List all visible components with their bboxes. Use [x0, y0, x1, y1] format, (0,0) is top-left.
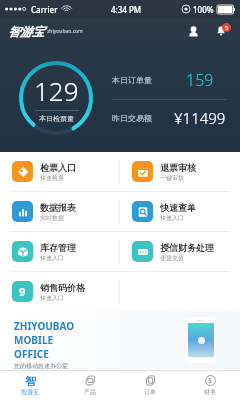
staticText: 100%: [193, 4, 214, 15]
staticText: 129: [34, 73, 79, 108]
staticText: ZHIYOUBAO: [14, 319, 75, 333]
button[interactable]: 产品: [60, 370, 120, 400]
staticText: 4:34 PM: [111, 4, 142, 15]
button[interactable]: 数据报表: [0, 192, 119, 231]
staticText: 检票入口: [40, 162, 76, 173]
button[interactable]: 检票入口: [0, 152, 119, 191]
button[interactable]: Account: [182, 20, 204, 42]
staticText: Carrier: [31, 4, 58, 15]
staticText: 本日检票量: [39, 114, 74, 123]
staticText: 销售码价格: [40, 282, 85, 293]
button[interactable]: 9: [0, 272, 119, 311]
staticText: 库存管理: [40, 242, 76, 253]
staticText: 数据报表: [40, 202, 76, 213]
staticText: 智游宝: [21, 388, 39, 396]
staticText: 授信财务处理: [160, 242, 214, 253]
staticText: 订单: [144, 388, 156, 396]
button[interactable]: 快速查单: [120, 192, 240, 231]
staticText: 快速入口: [40, 254, 64, 262]
button[interactable]: 库存管理: [0, 232, 119, 271]
staticText: 一键审核: [160, 174, 184, 182]
staticText: 便捷充值: [160, 254, 184, 262]
button[interactable]: 授信财务处理: [120, 232, 240, 271]
button[interactable]: 智: [0, 370, 60, 400]
button[interactable]: 订单: [120, 370, 180, 400]
staticText: 快速检票: [40, 174, 64, 182]
staticText: 您的移动急速办公室: [14, 362, 68, 369]
staticText: 智: [25, 374, 36, 387]
staticText: MOBILE: [14, 333, 54, 347]
staticText: 9: [19, 284, 26, 299]
button[interactable]: ZHIYOUBAO: [0, 311, 240, 369]
staticText: 产品: [84, 388, 96, 396]
staticText: 159: [186, 69, 214, 91]
staticText: 本日订单量: [112, 75, 152, 85]
staticText: 快速入口: [160, 214, 184, 222]
staticText: 财务: [204, 388, 216, 396]
staticText: 快速查单: [160, 202, 196, 213]
staticText: $: [208, 376, 213, 386]
staticText: 智游宝: [8, 24, 44, 39]
staticText: 5: [225, 24, 229, 32]
button[interactable]: 退票审核: [120, 152, 240, 191]
button[interactable]: Notifications: [210, 20, 232, 42]
staticText: 退票审核: [160, 162, 196, 173]
staticText: 实时数据: [40, 214, 64, 222]
staticText: ¥11499: [174, 108, 226, 128]
staticText: 昨日交易额: [112, 113, 152, 123]
button[interactable]: $: [180, 370, 240, 400]
staticText: OFFICE: [14, 347, 49, 361]
staticText: zhiyoubao.com: [47, 28, 83, 35]
staticText: 快速入口: [40, 294, 64, 302]
